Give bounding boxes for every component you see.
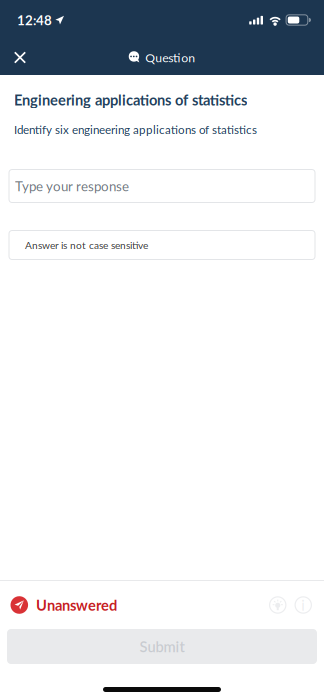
button[interactable]: Hint	[269, 596, 286, 614]
staticText: Engineering applications of statistics	[14, 91, 247, 109]
staticText: Identify six engineering applications of…	[14, 123, 257, 136]
button[interactable]: Close	[0, 40, 40, 75]
staticText: i	[301, 596, 305, 614]
staticText: Question	[145, 50, 195, 65]
staticText: Answer is not case sensitive	[25, 239, 148, 251]
staticText: Unanswered	[36, 596, 117, 614]
staticText: Submit	[139, 638, 184, 655]
staticText: Type your response	[15, 178, 129, 194]
staticText: 12:48	[17, 12, 52, 28]
button[interactable]: More information	[294, 596, 312, 614]
button[interactable]: Submit	[7, 629, 317, 664]
